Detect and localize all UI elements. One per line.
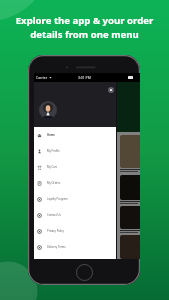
button[interactable]: [120, 175, 140, 200]
staticText: Contact Us: [47, 213, 61, 217]
staticText: Home: [47, 133, 55, 137]
button[interactable]: My Orders: [34, 175, 116, 191]
staticText: My Cart: [47, 165, 57, 169]
button[interactable]: Delivery Terms: [34, 239, 116, 255]
staticText: Delivery Terms: [47, 245, 66, 249]
button[interactable]: Loyalty Program: [34, 191, 116, 207]
button[interactable]: Privacy Policy: [34, 223, 116, 239]
staticText: Loyalty Program: [47, 197, 68, 201]
staticText: My Orders: [47, 181, 61, 185]
button[interactable]: Close menu: [108, 87, 114, 93]
staticText: Carrier: [36, 75, 48, 80]
button[interactable]: Profile photo: [39, 101, 57, 119]
staticText: Privacy Policy: [47, 229, 64, 233]
button[interactable]: [120, 235, 140, 259]
staticText: 3:01 PM: [78, 75, 91, 80]
button[interactable]: Contact Us: [34, 207, 116, 223]
staticText: My Profile: [47, 149, 60, 153]
staticText: Explore the app & your order details fro…: [0, 14, 169, 41]
button[interactable]: [120, 206, 140, 229]
button[interactable]: My Profile: [34, 143, 116, 159]
button[interactable]: Home: [34, 127, 116, 143]
button[interactable]: Home: [76, 264, 93, 281]
button[interactable]: My Cart: [34, 159, 116, 175]
